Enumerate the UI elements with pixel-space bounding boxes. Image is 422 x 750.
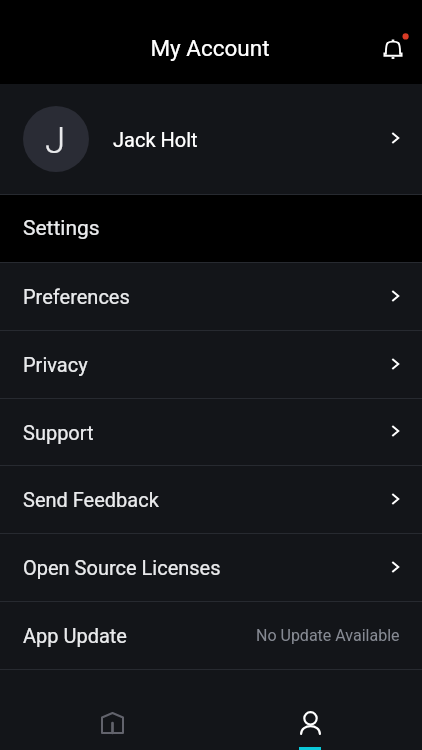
staticText: Jack Holt — [113, 128, 198, 151]
button[interactable]: App Update — [0, 602, 422, 669]
button[interactable]: Notifications — [369, 24, 417, 72]
staticText: Support — [23, 421, 94, 444]
staticText: App Update — [23, 624, 127, 647]
button[interactable]: Account — [211, 670, 409, 750]
staticText: Preferences — [23, 285, 130, 308]
staticText: My Account — [150, 35, 270, 61]
button[interactable]: Open Source Licenses — [0, 534, 422, 601]
staticText: Open Source Licenses — [23, 556, 221, 579]
button[interactable]: Preferences — [0, 263, 422, 330]
button[interactable]: Home — [13, 670, 211, 750]
button[interactable]: Privacy — [0, 331, 422, 398]
staticText: Settings — [23, 216, 100, 241]
button[interactable]: Support — [0, 399, 422, 465]
staticText: J — [45, 119, 66, 162]
staticText: Privacy — [23, 353, 88, 376]
button[interactable]: Send Feedback — [0, 466, 422, 533]
staticText: No Update Available — [256, 626, 400, 645]
staticText: Send Feedback — [23, 488, 159, 511]
button[interactable]: J — [0, 84, 422, 194]
